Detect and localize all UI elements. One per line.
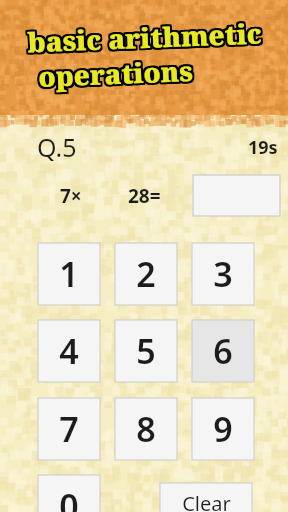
button[interactable]: 5 — [115, 320, 177, 382]
staticText: basic arithmetic — [24, 14, 261, 60]
staticText: 28= — [128, 183, 161, 209]
staticText: 2 — [136, 251, 156, 297]
staticText: basic arithmetic — [24, 15, 261, 61]
staticText: basic arithmetic — [27, 15, 264, 61]
button[interactable]: 4 — [38, 320, 100, 382]
staticText: 7× — [60, 183, 82, 209]
staticText: basic arithmetic — [25, 14, 262, 60]
staticText: operations — [36, 51, 193, 94]
staticText: operations — [37, 52, 194, 95]
staticText: operations — [39, 53, 196, 96]
staticText: basic arithmetic — [27, 12, 263, 58]
button[interactable]: 7 — [38, 398, 100, 460]
staticText: basic arithmetic — [25, 12, 261, 58]
staticText: 8 — [136, 406, 156, 452]
staticText: 1 — [59, 251, 79, 297]
staticText: 7 — [59, 406, 79, 452]
staticText: operations — [39, 54, 196, 97]
staticText: operations — [37, 54, 194, 97]
staticText: basic arithmetic — [24, 16, 261, 62]
staticText: operations — [35, 54, 192, 97]
button[interactable]: 6 — [192, 320, 254, 382]
staticText: operations — [35, 53, 192, 96]
staticText: 19s — [248, 135, 278, 160]
staticText: basic arithmetic — [28, 12, 264, 58]
staticText: operations — [38, 51, 195, 94]
staticText: 6 — [213, 328, 233, 374]
staticText: operations — [36, 53, 193, 96]
button[interactable]: 2 — [115, 243, 177, 305]
staticText: basic arithmetic — [27, 16, 264, 62]
staticText: basic arithmetic — [28, 13, 265, 59]
staticText: operations — [36, 54, 193, 97]
button[interactable]: 8 — [115, 398, 177, 460]
staticText: basic arithmetic — [24, 17, 261, 63]
staticText: basic arithmetic — [28, 14, 265, 60]
staticText: operations — [35, 52, 192, 95]
staticText: operations — [39, 52, 196, 95]
staticText: basic arithmetic — [28, 16, 265, 62]
staticText: basic arithmetic — [25, 13, 262, 59]
staticText: basic arithmetic — [28, 15, 265, 61]
staticText: operations — [38, 53, 195, 96]
staticText: 4 — [59, 328, 79, 374]
staticText: basic arithmetic — [26, 14, 263, 60]
button[interactable]: 9 — [192, 398, 254, 460]
staticText: operations — [36, 50, 193, 93]
button[interactable]: 3 — [192, 243, 254, 305]
button[interactable]: 0 — [38, 475, 100, 512]
staticText: basic arithmetic — [25, 16, 262, 62]
staticText: operations — [39, 51, 196, 94]
staticText: operations — [38, 54, 195, 97]
staticText: 5 — [136, 328, 156, 374]
staticText: operations — [36, 52, 193, 95]
button[interactable]: Clear — [160, 483, 252, 512]
staticText: basic arithmetic — [26, 12, 262, 58]
staticText: basic arithmetic — [26, 15, 263, 61]
staticText: basic arithmetic — [25, 15, 262, 61]
staticText: operations — [37, 53, 194, 96]
staticText: basic arithmetic — [27, 14, 264, 60]
staticText: basic arithmetic — [24, 13, 260, 59]
staticText: 3 — [213, 251, 233, 297]
button[interactable]: 1 — [38, 243, 100, 305]
staticText: 9 — [213, 406, 233, 452]
staticText: operations — [35, 50, 192, 93]
staticText: basic arithmetic — [26, 13, 263, 59]
staticText: operations — [37, 50, 194, 93]
staticText: Clear — [182, 490, 231, 512]
staticText: Q.5 — [37, 130, 77, 162]
staticText: basic arithmetic — [26, 16, 263, 62]
staticText: 0 — [59, 483, 79, 512]
button[interactable]: Answer field — [193, 175, 280, 216]
staticText: operations — [37, 51, 194, 94]
staticText: operations — [38, 50, 195, 93]
staticText: operations — [39, 50, 196, 93]
staticText: basic arithmetic — [27, 13, 264, 59]
staticText: operations — [38, 52, 195, 95]
staticText: operations — [35, 51, 192, 94]
